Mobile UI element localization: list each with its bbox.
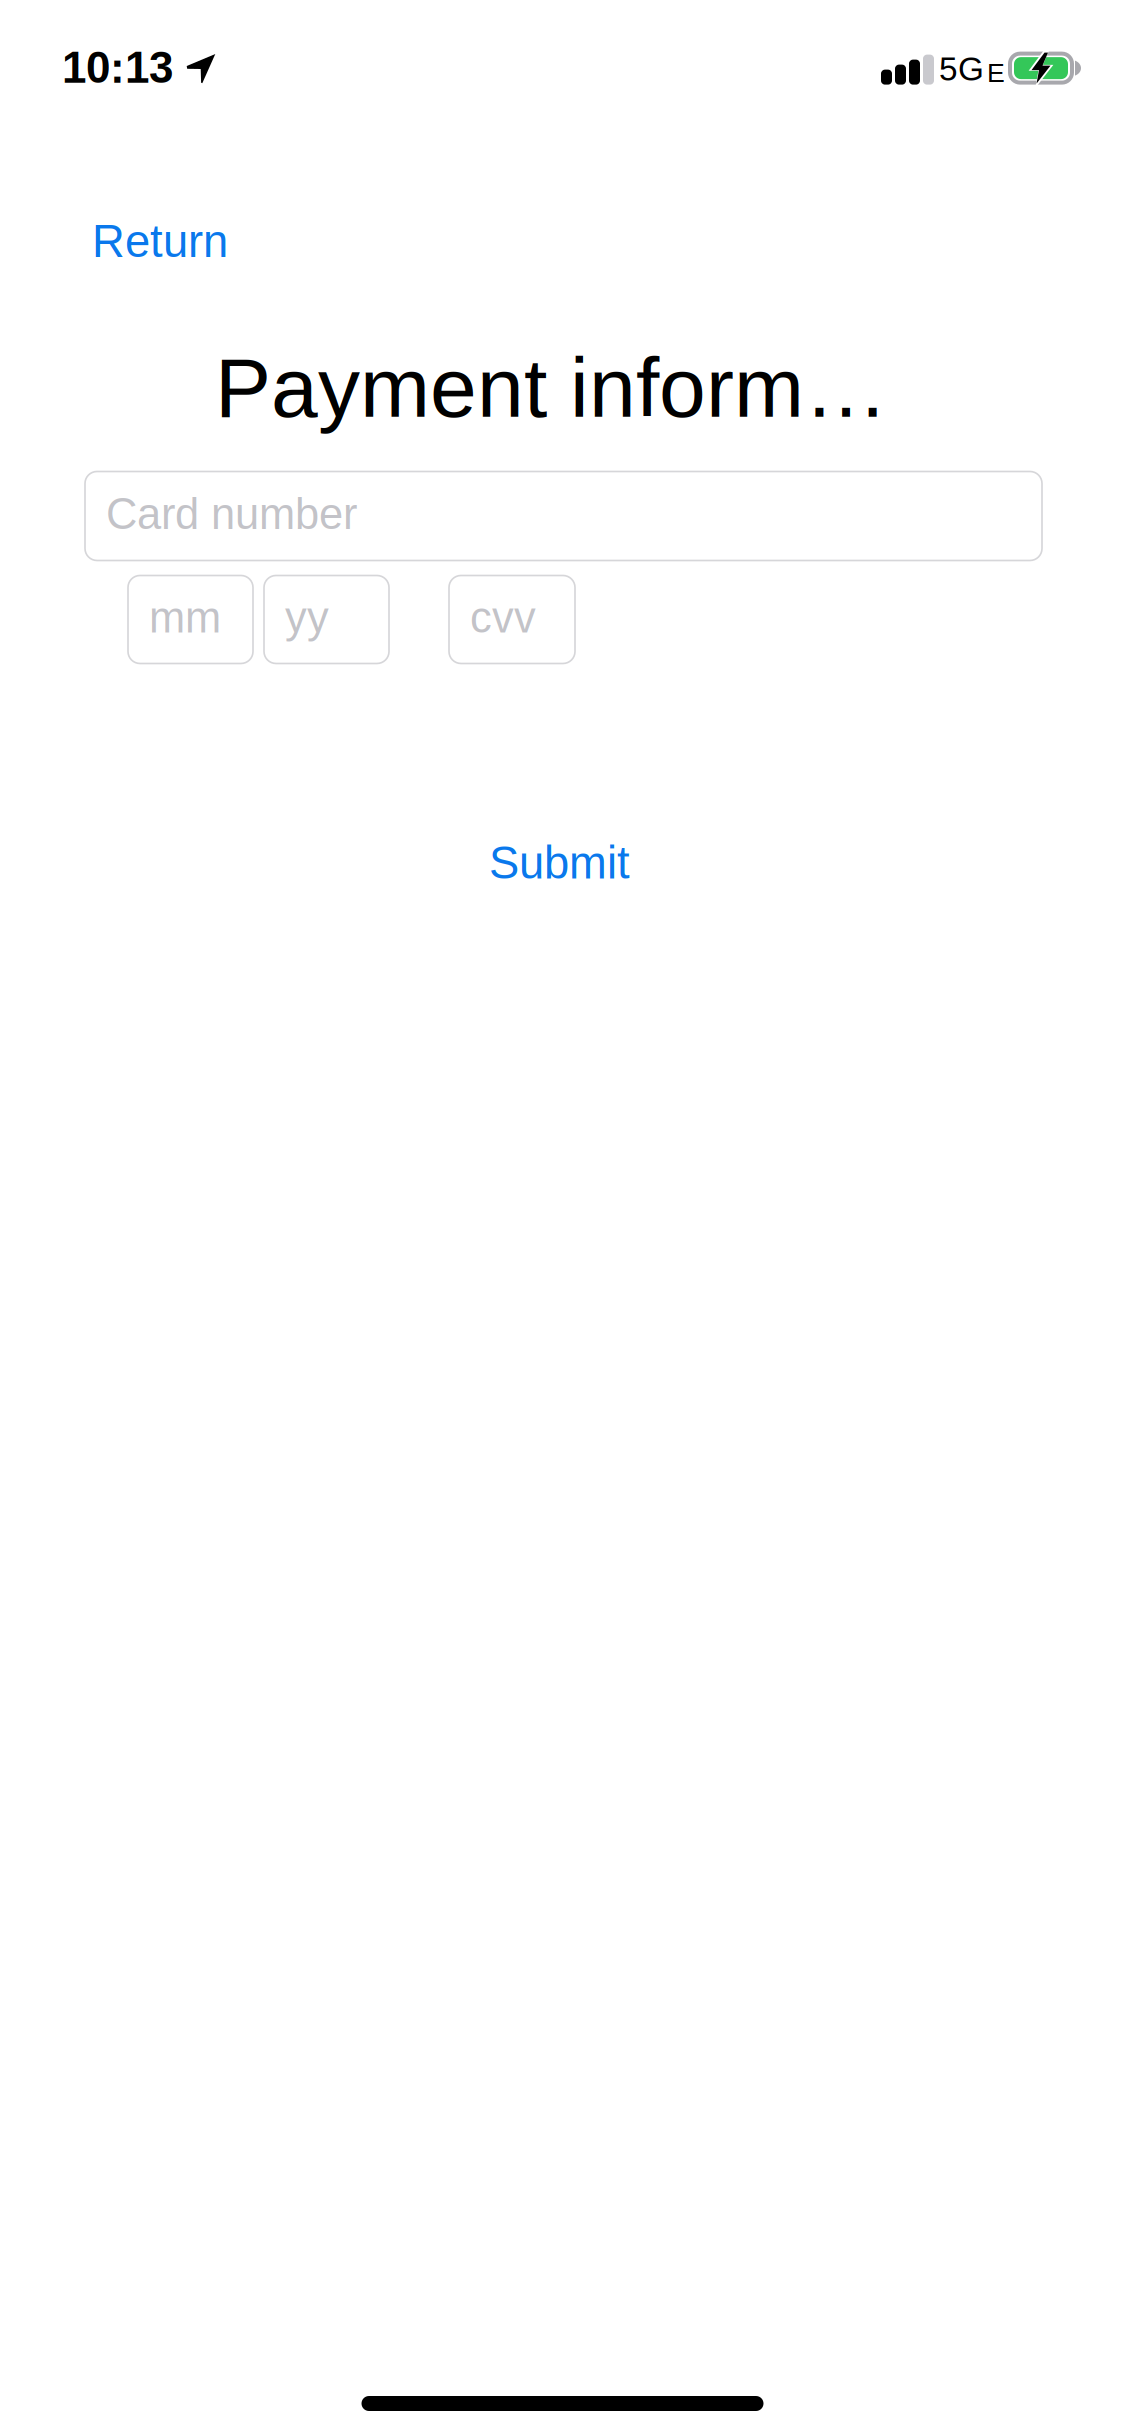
staticText: Submit	[489, 837, 630, 888]
button[interactable]: Card number	[85, 471, 1042, 560]
staticText: E	[987, 58, 1005, 88]
staticText: Payment inform…	[215, 341, 888, 434]
staticText: yy	[285, 593, 329, 642]
button[interactable]: Return	[0, 214, 248, 269]
staticText: Return	[92, 216, 228, 267]
staticText: Card number	[106, 490, 357, 538]
button[interactable]: mm	[128, 575, 253, 663]
button[interactable]: Submit	[0, 834, 1125, 891]
staticText: cvv	[470, 593, 536, 642]
button[interactable]: yy	[264, 575, 389, 663]
staticText: 10:13	[62, 43, 173, 92]
button[interactable]: cvv	[449, 575, 575, 663]
staticText: mm	[149, 593, 221, 642]
staticText: 5G	[939, 50, 984, 88]
